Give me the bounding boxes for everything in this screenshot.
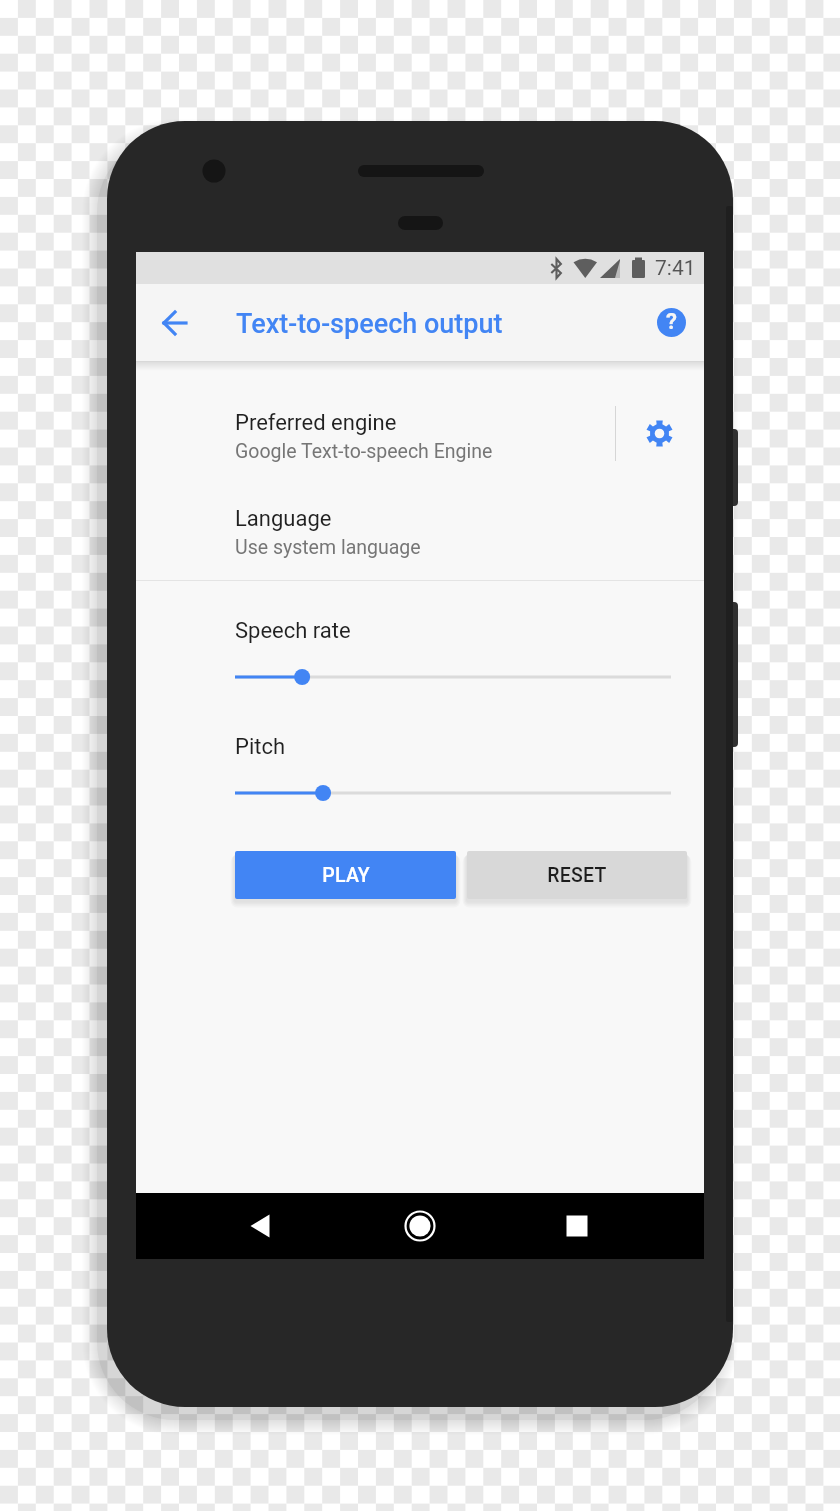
staticText: Pitch [235, 734, 286, 760]
button[interactable]: Back [227, 1193, 293, 1259]
button[interactable]: PLAY [235, 851, 456, 899]
button[interactable]: Help [647, 298, 695, 346]
button[interactable]: RESET [467, 851, 687, 899]
button[interactable]: Language [136, 468, 704, 561]
staticText: ? [666, 309, 677, 335]
staticText: Speech rate [235, 618, 351, 644]
staticText: Google Text-to-speech Engine [235, 440, 493, 463]
button[interactable]: Home [387, 1193, 453, 1259]
button[interactable]: Preferred engine [136, 372, 704, 465]
staticText: Preferred engine [235, 410, 397, 436]
staticText: Language [235, 506, 332, 532]
staticText: Use system language [235, 536, 421, 559]
button[interactable]: Engine settings [635, 409, 683, 457]
button[interactable]: Navigate up [151, 299, 199, 347]
staticText: RESET [547, 864, 607, 887]
staticText: 7:41 [655, 256, 696, 281]
staticText: PLAY [322, 864, 370, 887]
button[interactable]: Recent apps [544, 1193, 610, 1259]
staticText: Text-to-speech output [236, 308, 503, 340]
